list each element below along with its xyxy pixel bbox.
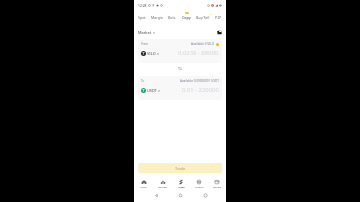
staticText: Spot — [138, 15, 146, 20]
button[interactable]: Home — [134, 174, 153, 189]
staticText: Bots — [168, 15, 176, 20]
staticText: P2P — [215, 15, 222, 20]
staticText: From — [141, 42, 148, 46]
staticText: Available 0.00000001 USDT — [180, 79, 219, 83]
staticText: VILO — [147, 51, 156, 56]
staticText: 0.01 - 220000 — [182, 86, 219, 94]
staticText: Buy/Sell — [196, 15, 210, 20]
staticText: USDT — [147, 88, 157, 93]
button[interactable]: USDT — [141, 88, 160, 93]
button[interactable]: Wallets — [208, 174, 226, 189]
button[interactable]: VILO — [141, 51, 159, 56]
button[interactable]: Markets — [153, 174, 172, 189]
staticText: Margin — [151, 15, 163, 20]
staticText: Futures — [195, 186, 204, 189]
staticText: Markets — [158, 186, 167, 189]
button[interactable]: Copy — [181, 15, 192, 20]
button[interactable]: Swap — [177, 66, 183, 71]
staticText: To — [141, 79, 145, 83]
staticText: 12:28 — [138, 3, 147, 8]
button[interactable]: Margin — [150, 15, 164, 20]
button[interactable]: Recents — [202, 192, 208, 198]
staticText: Wallets — [213, 186, 221, 189]
staticText: Trade — [178, 186, 185, 189]
staticText: Available 0 VILO — [191, 42, 215, 46]
button[interactable]: Back — [153, 192, 159, 198]
staticText: Trade — [175, 166, 186, 171]
button[interactable]: Trade — [138, 163, 222, 173]
button[interactable]: Home — [177, 192, 183, 198]
staticText: Copy — [182, 15, 191, 20]
button[interactable]: Order history — [217, 30, 222, 35]
staticText: Home — [140, 186, 147, 189]
button[interactable]: P2P — [214, 15, 223, 20]
button[interactable]: Spot — [137, 15, 147, 20]
button[interactable]: Trade — [172, 174, 190, 189]
button[interactable]: Bots — [167, 15, 177, 20]
button[interactable]: Buy/Sell — [195, 15, 211, 20]
button[interactable]: Market — [138, 30, 155, 35]
staticText: 0.0239 - 88000 — [178, 49, 219, 57]
button[interactable]: Futures — [190, 174, 208, 189]
staticText: Market — [138, 30, 152, 35]
